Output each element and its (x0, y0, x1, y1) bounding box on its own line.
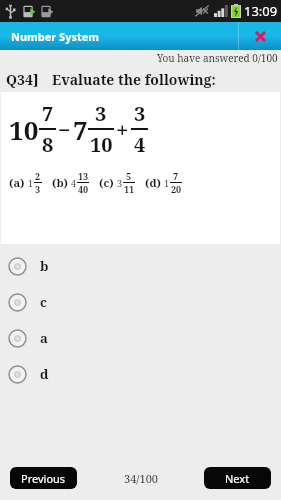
staticText: 34/100 (124, 471, 158, 486)
staticText: 3 (117, 177, 123, 189)
staticText: 2 (35, 170, 41, 182)
staticText: 1 (164, 177, 170, 189)
staticText: 7 (173, 170, 179, 182)
staticText: 4 (134, 131, 146, 158)
staticText: c (40, 293, 47, 311)
button[interactable]: b (0, 248, 281, 284)
staticText: 10 (9, 112, 39, 147)
staticText: b (40, 257, 49, 275)
staticText: 13:09 (244, 2, 278, 20)
staticText: 13 (78, 170, 89, 182)
staticText: Previous (21, 471, 66, 486)
staticText: Q34] (6, 70, 39, 89)
staticText: + (116, 114, 129, 144)
button[interactable]: c (0, 284, 281, 320)
staticText: a (40, 329, 48, 347)
button[interactable]: Previous (10, 467, 77, 489)
staticText: 7 (73, 112, 88, 147)
staticText: Number System (11, 29, 100, 44)
staticText: 10 (90, 131, 113, 158)
staticText: − (58, 114, 71, 144)
staticText: You have answered 0/100 (157, 51, 278, 65)
staticText: (c) (99, 175, 114, 190)
staticText: 11 (124, 183, 135, 195)
staticText: (a) (9, 175, 25, 190)
staticText: (d) (145, 175, 161, 190)
staticText: 3 (95, 100, 107, 127)
staticText: 40 (78, 183, 89, 195)
staticText: 4 (71, 177, 77, 189)
button[interactable]: Close (239, 22, 281, 50)
staticText: 8 (42, 131, 54, 158)
staticText: 20 (171, 183, 182, 195)
staticText: (b) (52, 175, 68, 190)
staticText: 3 (134, 100, 146, 127)
staticText: 1 (28, 177, 34, 189)
staticText: 7 (42, 100, 54, 127)
staticText: Evaluate the following: (52, 70, 216, 89)
button[interactable]: Next (204, 467, 271, 489)
staticText: d (40, 365, 49, 383)
button[interactable]: a (0, 320, 281, 356)
staticText: 3 (35, 183, 41, 195)
staticText: Next (225, 471, 250, 486)
button[interactable]: d (0, 356, 281, 392)
staticText: 5 (126, 170, 132, 182)
